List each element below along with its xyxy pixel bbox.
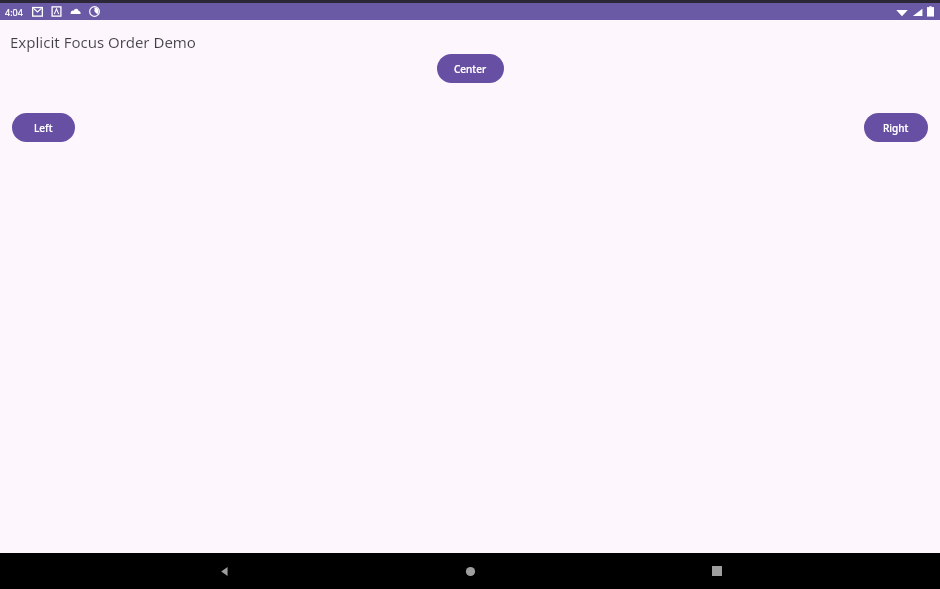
staticText: Right [883, 121, 909, 135]
button[interactable]: Back [201, 553, 247, 589]
staticText: Center [454, 62, 487, 76]
button[interactable]: Recent apps [694, 553, 740, 589]
staticText: 4:04 [5, 6, 23, 18]
staticText: Left [34, 121, 53, 135]
button[interactable]: Left [12, 113, 75, 142]
button[interactable]: Home [447, 553, 493, 589]
staticText: Explicit Focus Order Demo [10, 32, 196, 52]
button[interactable]: Right [864, 113, 928, 142]
button[interactable]: Center [437, 54, 504, 83]
